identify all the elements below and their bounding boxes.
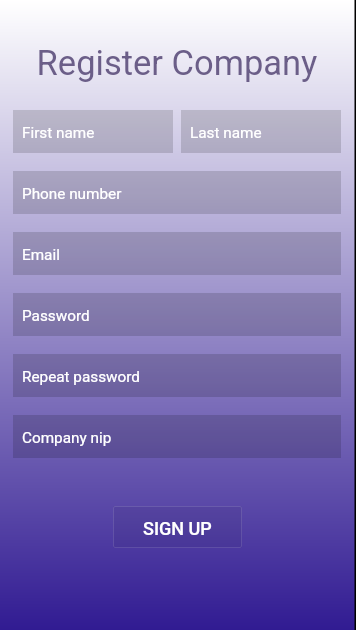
staticText: First name xyxy=(22,124,95,142)
button[interactable]: Repeat password xyxy=(13,354,341,397)
staticText: Repeat password xyxy=(22,368,140,386)
staticText: Company nip xyxy=(22,429,112,447)
button[interactable]: Company nip xyxy=(13,415,341,458)
staticText: Last name xyxy=(190,124,262,142)
button[interactable]: Phone number xyxy=(13,171,341,214)
button[interactable]: Password xyxy=(13,293,341,336)
button[interactable]: Last name xyxy=(181,110,341,153)
button[interactable]: First name xyxy=(13,110,173,153)
button[interactable]: SIGN UP xyxy=(113,506,242,548)
staticText: Phone number xyxy=(22,185,122,203)
staticText: Register Company xyxy=(0,43,354,83)
button[interactable]: Email xyxy=(13,232,341,275)
staticText: SIGN UP xyxy=(143,518,212,539)
staticText: Email xyxy=(22,246,60,264)
staticText: Password xyxy=(22,307,90,325)
